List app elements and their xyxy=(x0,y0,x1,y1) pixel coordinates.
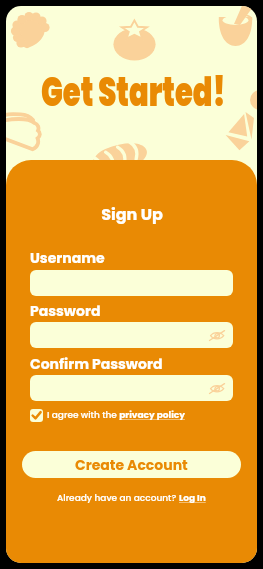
staticText: Create Account xyxy=(75,455,188,475)
button[interactable]: I agree with the privacy policy xyxy=(30,409,185,422)
staticText: Get Started! xyxy=(41,64,226,121)
button[interactable]: Log In xyxy=(179,492,206,505)
staticText: Username xyxy=(30,248,105,268)
button[interactable]: Create Account xyxy=(22,451,241,478)
staticText: Confirm Password xyxy=(30,354,163,374)
button[interactable]: Show password xyxy=(209,383,225,394)
button[interactable]: Show password xyxy=(30,322,233,348)
staticText: Already have an account? xyxy=(57,492,179,505)
button[interactable]: Show password xyxy=(209,330,225,341)
button[interactable]: Show password xyxy=(30,375,233,401)
button[interactable] xyxy=(30,270,233,296)
staticText: I agree with the privacy policy xyxy=(47,409,185,422)
staticText: Password xyxy=(30,301,101,321)
staticText: Sign Up xyxy=(101,203,163,225)
